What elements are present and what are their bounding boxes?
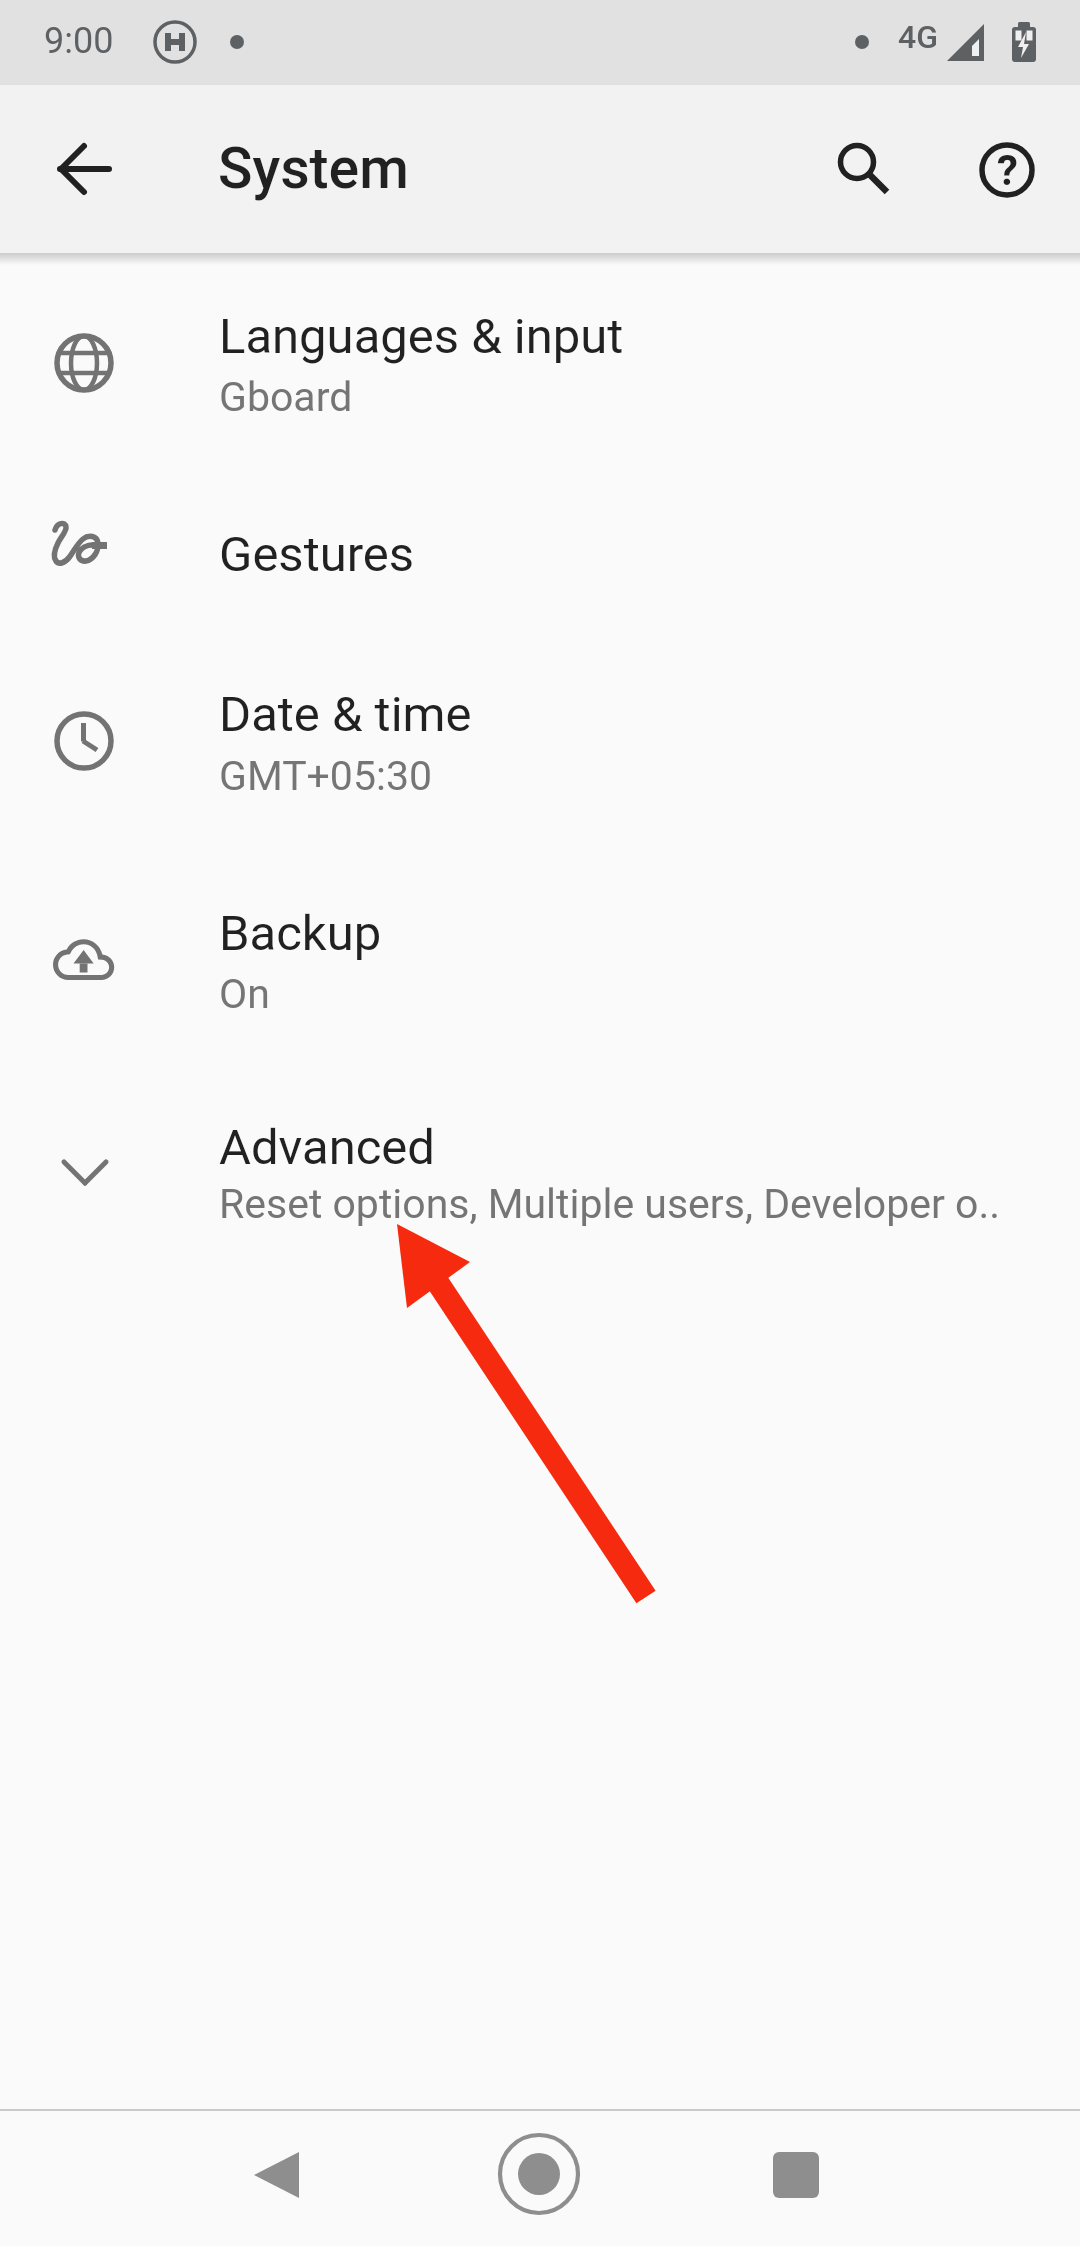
- staticText: Advanced: [219, 1119, 435, 1176]
- staticText: 9:00: [44, 20, 114, 62]
- button[interactable]: ?: [959, 122, 1055, 218]
- staticText: Backup: [219, 905, 382, 962]
- button[interactable]: Backup: [0, 848, 1080, 1066]
- staticText: Gboard: [219, 373, 353, 421]
- button[interactable]: Languages & input: [0, 258, 1080, 466]
- button[interactable]: [37, 121, 133, 217]
- button[interactable]: [814, 121, 910, 217]
- button[interactable]: [489, 2127, 585, 2223]
- staticText: ?: [997, 146, 1018, 195]
- staticText: Gestures: [219, 526, 415, 583]
- button[interactable]: Advanced: [0, 1066, 1080, 1290]
- button[interactable]: Gestures: [0, 466, 1080, 636]
- staticText: On: [219, 970, 270, 1018]
- staticText: Date & time: [219, 686, 472, 743]
- button[interactable]: [229, 2127, 325, 2223]
- staticText: GMT+05:30: [219, 752, 432, 800]
- button[interactable]: [748, 2127, 844, 2223]
- staticText: Languages & input: [219, 308, 624, 365]
- staticText: 4G: [898, 18, 938, 56]
- button[interactable]: Date & time: [0, 636, 1080, 848]
- staticText: System: [218, 135, 409, 202]
- staticText: Reset options, Multiple users, Developer…: [219, 1180, 1001, 1228]
